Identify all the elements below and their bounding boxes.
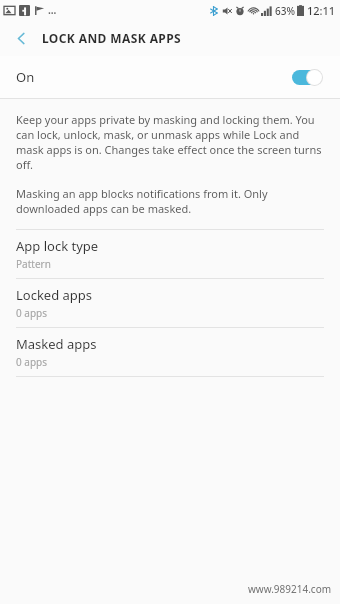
staticText: Masked apps [16, 335, 97, 353]
staticText: Masking an app blocks notifications from… [16, 186, 324, 216]
staticText: 0 apps [16, 306, 48, 320]
staticText: Keep your apps private by masking and lo… [16, 112, 324, 172]
staticText: www.989214.com [248, 582, 332, 596]
button[interactable]: On [0, 56, 340, 98]
button[interactable]: Back [0, 20, 42, 56]
staticText: App lock type [16, 237, 99, 255]
button[interactable]: Locked apps [0, 279, 340, 327]
staticText: LOCK AND MASK APPS [42, 30, 182, 46]
staticText: On [16, 68, 35, 86]
staticText: Pattern [16, 257, 51, 271]
staticText: 0 apps [16, 355, 48, 369]
staticText: Locked apps [16, 286, 93, 304]
staticText: 63% [275, 4, 295, 18]
button[interactable]: Masked apps [0, 328, 340, 376]
button[interactable]: App lock type [0, 230, 340, 278]
staticText: ... [48, 3, 57, 17]
staticText: 12:11 [307, 3, 336, 18]
